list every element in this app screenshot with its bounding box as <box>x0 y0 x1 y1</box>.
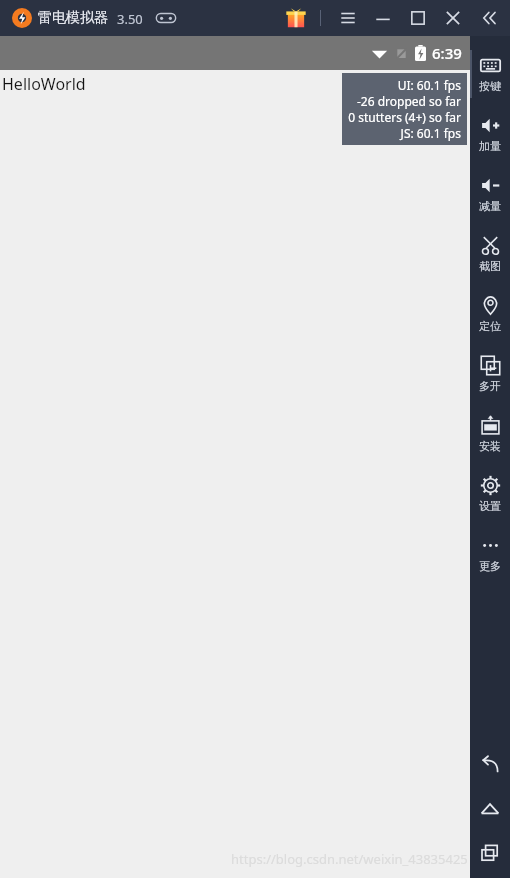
button[interactable]: 按键 <box>470 44 510 104</box>
staticText: 多开 <box>479 379 501 393</box>
button[interactable]: Menu <box>334 4 362 32</box>
button[interactable]: 设置 <box>470 464 510 524</box>
button[interactable]: 更多 <box>470 524 510 584</box>
button[interactable]: Maximize <box>404 4 432 32</box>
button[interactable]: 加量 <box>470 104 510 164</box>
staticText: HelloWorld <box>2 73 86 95</box>
staticText: 减量 <box>479 199 501 213</box>
staticText: 截图 <box>479 259 501 273</box>
staticText: 安装 <box>479 439 501 453</box>
staticText: https://blog.csdn.net/weixin_43835425 <box>231 850 468 868</box>
button[interactable]: 截图 <box>470 224 510 284</box>
button[interactable]: Home <box>470 796 510 822</box>
button[interactable]: Collapse sidebar <box>476 4 504 32</box>
staticText: 6:39 <box>432 43 462 63</box>
staticText: 设置 <box>479 499 501 513</box>
button[interactable]: 安装 <box>470 404 510 464</box>
staticText: UI: 60.1 fps <box>397 77 461 93</box>
button[interactable]: Close <box>439 4 467 32</box>
staticText: 雷电模拟器 <box>38 9 108 27</box>
staticText: 0 stutters (4+) so far <box>348 109 461 125</box>
button[interactable]: 定位 <box>470 284 510 344</box>
staticText: 加量 <box>479 139 501 153</box>
button[interactable]: 减量 <box>470 164 510 224</box>
staticText: 3.50 <box>117 10 143 28</box>
button[interactable]: Minimize <box>369 4 397 32</box>
staticText: 定位 <box>479 319 501 333</box>
button[interactable]: 多开 <box>470 344 510 404</box>
staticText: -26 dropped so far <box>356 93 461 109</box>
button[interactable]: Back <box>470 752 510 778</box>
staticText: 按键 <box>479 79 501 93</box>
staticText: JS: 60.1 fps <box>400 125 461 141</box>
staticText: 更多 <box>479 559 501 573</box>
button[interactable]: Gift <box>285 7 307 29</box>
button[interactable]: Recents <box>470 840 510 866</box>
